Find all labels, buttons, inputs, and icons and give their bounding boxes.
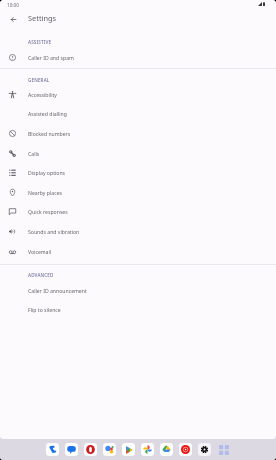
staticText: Flip to silence: [28, 306, 61, 313]
button[interactable]: Calls: [0, 143, 276, 163]
staticText: GENERAL: [28, 77, 50, 83]
staticText: Settings: [28, 13, 57, 23]
button[interactable]: Voicemail: [0, 241, 276, 261]
button[interactable]: Caller ID announcement: [0, 280, 276, 300]
button[interactable]: Messages: [65, 443, 78, 456]
staticText: 10:00: [7, 2, 19, 8]
button[interactable]: Opera: [84, 443, 97, 456]
button[interactable]: Flip to silence: [0, 299, 276, 319]
staticText: Calls: [28, 150, 40, 157]
staticText: Caller ID announcement: [28, 287, 87, 294]
button[interactable]: Settings: [198, 443, 211, 456]
button[interactable]: Caller ID and spam: [0, 47, 276, 67]
button[interactable]: Blocked numbers: [0, 123, 276, 143]
button[interactable]: Drive: [160, 443, 173, 456]
button[interactable]: Contacts: [103, 443, 116, 456]
button[interactable]: Quick responses: [0, 201, 276, 221]
staticText: Quick responses: [28, 208, 68, 215]
staticText: Assisted dialling: [28, 110, 67, 117]
staticText: ASSISTIVE: [28, 39, 52, 45]
staticText: ADVANCED: [28, 272, 54, 278]
staticText: Nearby places: [28, 189, 63, 196]
button[interactable]: Sounds and vibration: [0, 221, 276, 241]
staticText: Blocked numbers: [28, 130, 71, 137]
button[interactable]: Accessibility: [0, 84, 276, 104]
button[interactable]: YouTube Music: [179, 443, 192, 456]
staticText: Sounds and vibration: [28, 228, 80, 235]
staticText: Display options: [28, 169, 66, 176]
button[interactable]: Nearby places: [0, 182, 276, 202]
staticText: Accessibility: [28, 91, 57, 98]
button[interactable]: All apps: [217, 443, 230, 456]
staticText: Caller ID and spam: [28, 54, 74, 61]
button[interactable]: Play Store: [122, 443, 135, 456]
button[interactable]: Photos: [141, 443, 154, 456]
staticText: Voicemail: [28, 248, 52, 255]
button[interactable]: Phone: [46, 443, 59, 456]
button[interactable]: Display options: [0, 162, 276, 182]
button[interactable]: Assisted dialling: [0, 103, 276, 123]
button[interactable]: Back: [6, 12, 20, 26]
